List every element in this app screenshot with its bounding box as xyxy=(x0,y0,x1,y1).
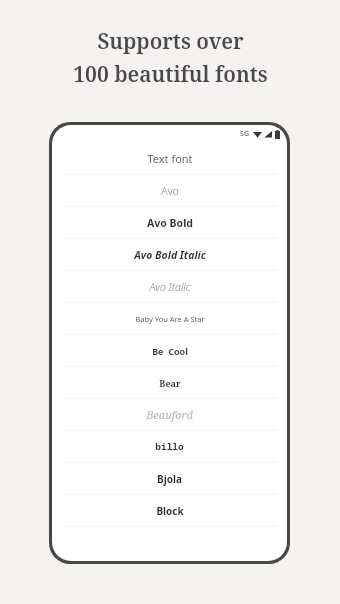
staticText: Text font xyxy=(147,151,193,166)
staticText: 100 beautiful fonts xyxy=(73,60,268,89)
button[interactable]: Text font xyxy=(52,143,287,174)
staticText: 5G xyxy=(240,129,250,139)
button[interactable]: Be Cool xyxy=(52,335,287,366)
button[interactable]: Beauford xyxy=(52,399,287,430)
staticText: Block xyxy=(156,504,184,518)
staticText: billo xyxy=(155,440,184,453)
staticText: Baby You Are A Star xyxy=(135,314,205,324)
staticText: Supports over xyxy=(97,27,244,56)
button[interactable]: Avo Italic xyxy=(52,271,287,302)
staticText: Bear xyxy=(159,377,181,389)
staticText: Avo xyxy=(161,184,179,198)
button[interactable]: Avo Bold Italic xyxy=(52,239,287,270)
button[interactable]: Avo Bold xyxy=(52,207,287,238)
staticText: Beauford xyxy=(146,407,193,422)
button[interactable]: Bjola xyxy=(52,463,287,494)
button[interactable]: Bear xyxy=(52,367,287,398)
staticText: Bjola xyxy=(157,472,182,486)
staticText: Avo Bold xyxy=(147,216,193,230)
button[interactable]: Avo xyxy=(52,175,287,206)
staticText: Be Cool xyxy=(152,345,188,357)
button[interactable]: Block xyxy=(52,495,287,526)
button[interactable]: Baby You Are A Star xyxy=(52,303,287,334)
staticText: Avo Bold Italic xyxy=(134,248,206,262)
button[interactable]: billo xyxy=(52,431,287,462)
staticText: Avo Italic xyxy=(149,280,191,294)
